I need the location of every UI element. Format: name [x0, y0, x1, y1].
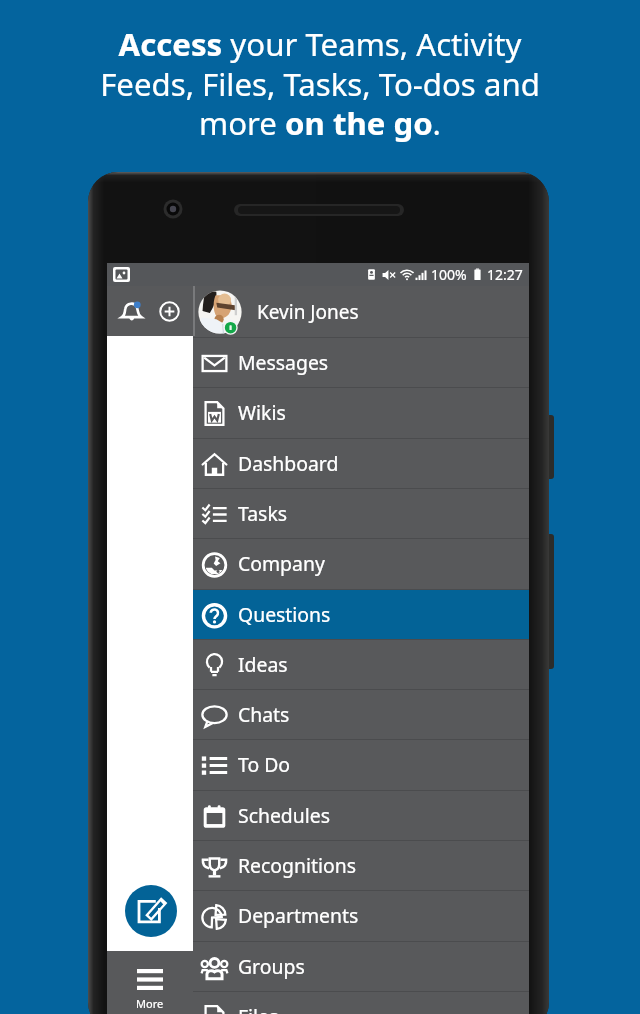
button[interactable]: Ideas — [193, 640, 529, 690]
staticText: Wikis — [238, 399, 286, 425]
button[interactable]: Compose — [125, 885, 177, 937]
staticText: Recognitions — [238, 852, 356, 878]
button[interactable]: Add — [151, 293, 187, 329]
button[interactable]: Dashboard — [193, 439, 529, 489]
staticText: Files — [238, 1003, 279, 1014]
button[interactable]: Wikis — [193, 388, 529, 438]
button[interactable]: Tasks — [193, 489, 529, 539]
staticText: Dashboard — [238, 450, 339, 476]
button[interactable]: Notifications — [114, 293, 150, 329]
staticText: 12:27 — [487, 265, 523, 284]
staticText: Messages — [238, 349, 329, 375]
staticText: Company — [238, 550, 325, 576]
staticText: To Do — [238, 751, 291, 777]
staticText: More — [136, 996, 164, 1011]
staticText: Questions — [238, 601, 331, 627]
button[interactable]: Messages — [193, 338, 529, 388]
staticText: Tasks — [238, 500, 288, 526]
staticText: Chats — [238, 701, 290, 727]
button[interactable]: Kevin Jones — [193, 286, 529, 337]
staticText: Schedules — [238, 802, 331, 828]
button[interactable]: More — [107, 951, 193, 1014]
button[interactable]: Schedules — [193, 791, 529, 841]
staticText: Groups — [238, 953, 305, 979]
button[interactable]: Groups — [193, 942, 529, 992]
button[interactable]: Departments — [193, 891, 529, 941]
staticText: 100% — [431, 265, 467, 284]
button[interactable]: To Do — [193, 740, 529, 790]
button[interactable]: Recognitions — [193, 841, 529, 891]
staticText: Kevin Jones — [257, 299, 359, 325]
button[interactable]: Questions — [193, 590, 529, 640]
button[interactable]: Files — [193, 992, 529, 1014]
button[interactable]: Company — [193, 539, 529, 589]
button[interactable]: Chats — [193, 690, 529, 740]
staticText: Ideas — [238, 651, 288, 677]
staticText: Access your Teams, Activity Feeds, Files… — [100, 23, 540, 144]
staticText: Departments — [238, 902, 359, 928]
